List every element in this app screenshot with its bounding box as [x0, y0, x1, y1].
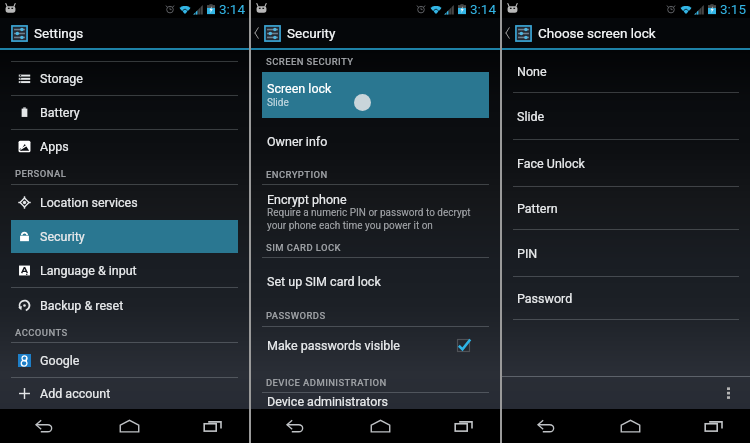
staticText: PIN	[517, 246, 538, 261]
staticText: Security	[287, 25, 336, 41]
button[interactable]: Back	[20, 409, 68, 443]
button[interactable]: Battery	[0, 96, 249, 129]
staticText: Set up SIM card lock	[267, 274, 381, 289]
button[interactable]: Slide	[502, 93, 750, 139]
staticText: PASSWORDS	[266, 310, 326, 321]
button[interactable]: Storage	[0, 62, 249, 95]
staticText: Security	[40, 229, 85, 244]
button[interactable]: Password	[502, 277, 750, 319]
button[interactable]: Device administrators	[251, 393, 500, 409]
button[interactable]: Recent apps	[440, 409, 488, 443]
button[interactable]: Screen lock	[251, 72, 500, 118]
button[interactable]: Navigate up	[251, 19, 262, 47]
staticText: SIM CARD LOCK	[266, 242, 341, 253]
staticText: Encrypt phone	[267, 192, 347, 207]
button[interactable]: Home	[105, 409, 153, 443]
button[interactable]: Add account	[0, 378, 249, 409]
button[interactable]: Back	[271, 409, 319, 443]
staticText: Location services	[40, 195, 138, 210]
button[interactable]: None	[502, 50, 750, 92]
button[interactable]: Face Unlock	[502, 140, 750, 186]
staticText: Choose screen lock	[538, 25, 656, 41]
button[interactable]: Owner info	[251, 118, 500, 164]
button[interactable]: Language & input	[0, 253, 249, 287]
staticText: Face Unlock	[517, 156, 585, 171]
button[interactable]: Location services	[0, 185, 249, 220]
staticText: Add account	[40, 386, 111, 401]
staticText: 3:14	[219, 1, 246, 17]
staticText: Storage	[40, 71, 83, 86]
staticText: Pattern	[517, 201, 558, 216]
staticText: Password	[517, 291, 573, 306]
button[interactable]: Set up SIM card lock	[251, 258, 500, 305]
button[interactable]: PIN	[502, 230, 750, 276]
staticText: Google	[40, 353, 80, 368]
staticText: 3:15	[720, 1, 747, 17]
staticText: Require a numeric PIN or password to dec…	[267, 207, 471, 231]
staticText: ACCOUNTS	[15, 327, 68, 338]
staticText: Apps	[40, 139, 69, 154]
button[interactable]: Recent apps	[690, 409, 738, 443]
staticText: Device administrators	[267, 394, 389, 409]
staticText: Battery	[40, 105, 80, 120]
button[interactable]: Home	[356, 409, 404, 443]
staticText: None	[517, 64, 547, 79]
staticText: PERSONAL	[15, 168, 67, 179]
button[interactable]: Apps	[0, 130, 249, 163]
button[interactable]: More options	[719, 384, 737, 402]
staticText: Slide	[517, 109, 545, 124]
staticText: Screen lock	[267, 81, 332, 96]
button[interactable]: Google	[0, 343, 249, 377]
staticText: Owner info	[267, 134, 328, 149]
staticText: Slide	[267, 97, 289, 109]
staticText: SCREEN SECURITY	[266, 56, 354, 67]
staticText: Settings	[34, 25, 84, 41]
staticText: 3:14	[470, 1, 497, 17]
staticText: Make passwords visible	[267, 338, 400, 353]
staticText: Backup & reset	[40, 298, 124, 313]
button[interactable]: Home	[606, 409, 654, 443]
button[interactable]: Recent apps	[189, 409, 237, 443]
button[interactable]: Backup & reset	[0, 288, 249, 322]
button[interactable]: Back	[522, 409, 570, 443]
button[interactable]: Make passwords visible	[251, 327, 500, 363]
button[interactable]: Encrypt phone	[251, 185, 500, 238]
staticText: ENCRYPTION	[266, 169, 328, 180]
button[interactable]: Pattern	[502, 187, 750, 229]
staticText: DEVICE ADMINISTRATION	[266, 377, 387, 388]
staticText: Language & input	[40, 263, 137, 278]
button[interactable]: Security	[0, 220, 249, 253]
button[interactable]: Navigate up	[502, 19, 513, 47]
